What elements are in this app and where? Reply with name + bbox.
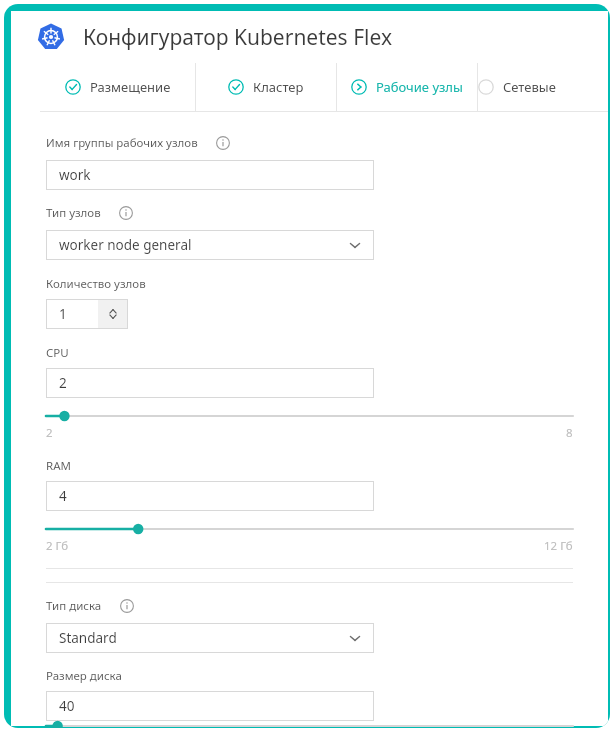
button[interactable]: Информация <box>214 134 232 152</box>
staticText: Тип узлов <box>46 205 101 221</box>
button[interactable]: Сетевые настройки <box>478 63 608 111</box>
button[interactable]: Увеличить или уменьшить <box>98 300 128 328</box>
staticText: Тип диска <box>46 598 102 614</box>
staticText: Конфигуратор Kubernetes Flex <box>83 23 392 52</box>
staticText: Standard <box>59 629 117 647</box>
button[interactable]: 4 <box>46 481 374 511</box>
button[interactable]: Размещение <box>40 63 195 111</box>
staticText: RAM <box>46 458 71 474</box>
staticText: 4 <box>59 487 67 505</box>
staticText: 2 <box>59 374 67 392</box>
staticText: Размещение <box>90 78 171 96</box>
staticText: worker node general <box>59 236 192 254</box>
button[interactable]: work <box>46 160 374 190</box>
button[interactable]: Информация <box>118 597 136 615</box>
staticText: Рабочие узлы <box>376 78 463 96</box>
button[interactable]: 40 <box>46 691 374 721</box>
staticText: 2 <box>46 425 53 441</box>
staticText: Кластер <box>253 78 304 96</box>
staticText: 1 <box>59 305 67 323</box>
staticText: 12 Гб <box>544 538 573 554</box>
button[interactable]: Кластер <box>196 63 336 111</box>
button[interactable]: Standard <box>46 623 374 653</box>
button[interactable]: 1 <box>46 299 128 329</box>
button[interactable]: Информация <box>117 204 135 222</box>
button[interactable] <box>46 522 573 536</box>
staticText: 8 <box>566 425 573 441</box>
staticText: Размер диска <box>46 668 122 684</box>
staticText: work <box>59 166 91 184</box>
button[interactable]: 2 <box>46 368 374 398</box>
staticText: Количество узлов <box>46 276 146 292</box>
button[interactable]: Рабочие узлы <box>337 63 477 111</box>
staticText: Сетевые настройки <box>503 78 608 96</box>
staticText: 2 Гб <box>46 538 69 554</box>
staticText: CPU <box>46 345 69 361</box>
button[interactable]: worker node general <box>46 230 374 260</box>
button[interactable] <box>46 409 573 423</box>
staticText: Имя группы рабочих узлов <box>46 135 198 151</box>
staticText: 40 <box>59 697 75 715</box>
